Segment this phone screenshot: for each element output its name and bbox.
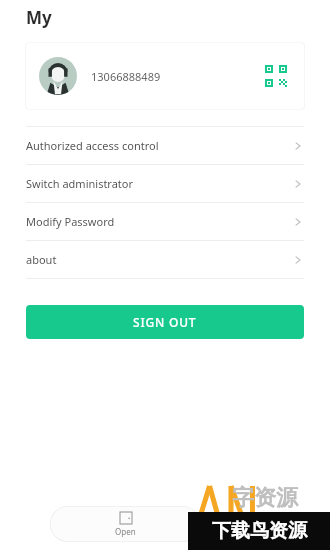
button[interactable]: Switch administrator — [26, 165, 304, 202]
button[interactable]: Open — [50, 506, 200, 542]
staticText: 字资源 — [232, 484, 298, 512]
button[interactable]: Authorized access control — [26, 127, 304, 164]
button[interactable]: Show QR code — [261, 61, 291, 91]
staticText: 13066888489 — [91, 69, 161, 84]
staticText: Open — [115, 526, 136, 537]
button[interactable]: SIGN OUT — [26, 305, 304, 339]
staticText: Authorized access control — [26, 138, 159, 153]
staticText: Switch administrator — [26, 176, 134, 191]
staticText: My — [26, 6, 52, 29]
button[interactable]: 13066888489 — [25, 42, 305, 110]
staticText: 下载鸟资源 — [212, 519, 307, 543]
button[interactable]: Modify Password — [26, 203, 304, 240]
staticText: Modify Password — [26, 214, 115, 229]
staticText: about — [26, 252, 57, 267]
staticText: SIGN OUT — [133, 314, 197, 330]
button[interactable]: about — [26, 241, 304, 278]
